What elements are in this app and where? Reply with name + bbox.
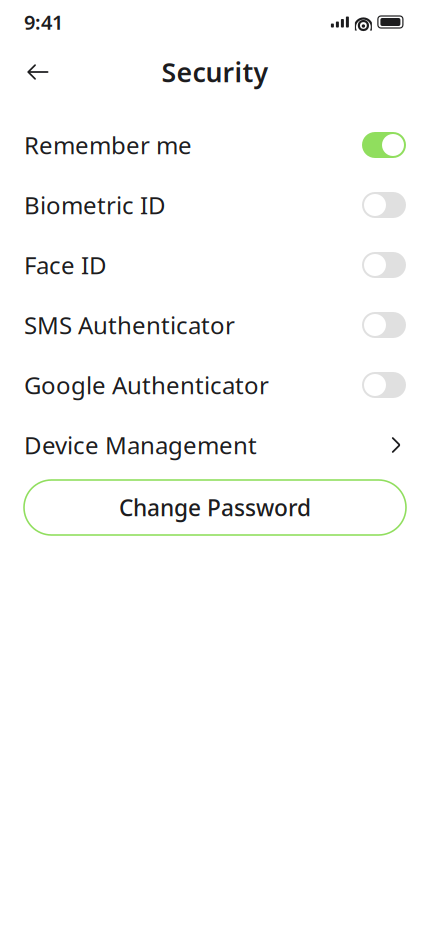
staticText: Device Management	[24, 429, 257, 461]
button[interactable]: Device Management	[0, 415, 430, 475]
staticText: Face ID	[24, 249, 107, 281]
staticText: Security	[161, 54, 268, 90]
staticText: Google Authenticator	[24, 369, 269, 401]
button[interactable]: Remember me	[0, 115, 430, 175]
staticText: 9:41	[24, 9, 63, 35]
button[interactable]: Google Authenticator	[0, 355, 430, 415]
button[interactable]: Change Password	[24, 480, 406, 535]
button[interactable]: Biometric ID	[0, 175, 430, 235]
button[interactable]: Face ID	[0, 235, 430, 295]
button[interactable]: SMS Authenticator	[0, 295, 430, 355]
staticText: Remember me	[24, 129, 192, 161]
staticText: SMS Authenticator	[24, 309, 235, 341]
button[interactable]: Back	[18, 52, 58, 92]
staticText: Biometric ID	[24, 189, 166, 221]
staticText: Change Password	[119, 492, 311, 522]
